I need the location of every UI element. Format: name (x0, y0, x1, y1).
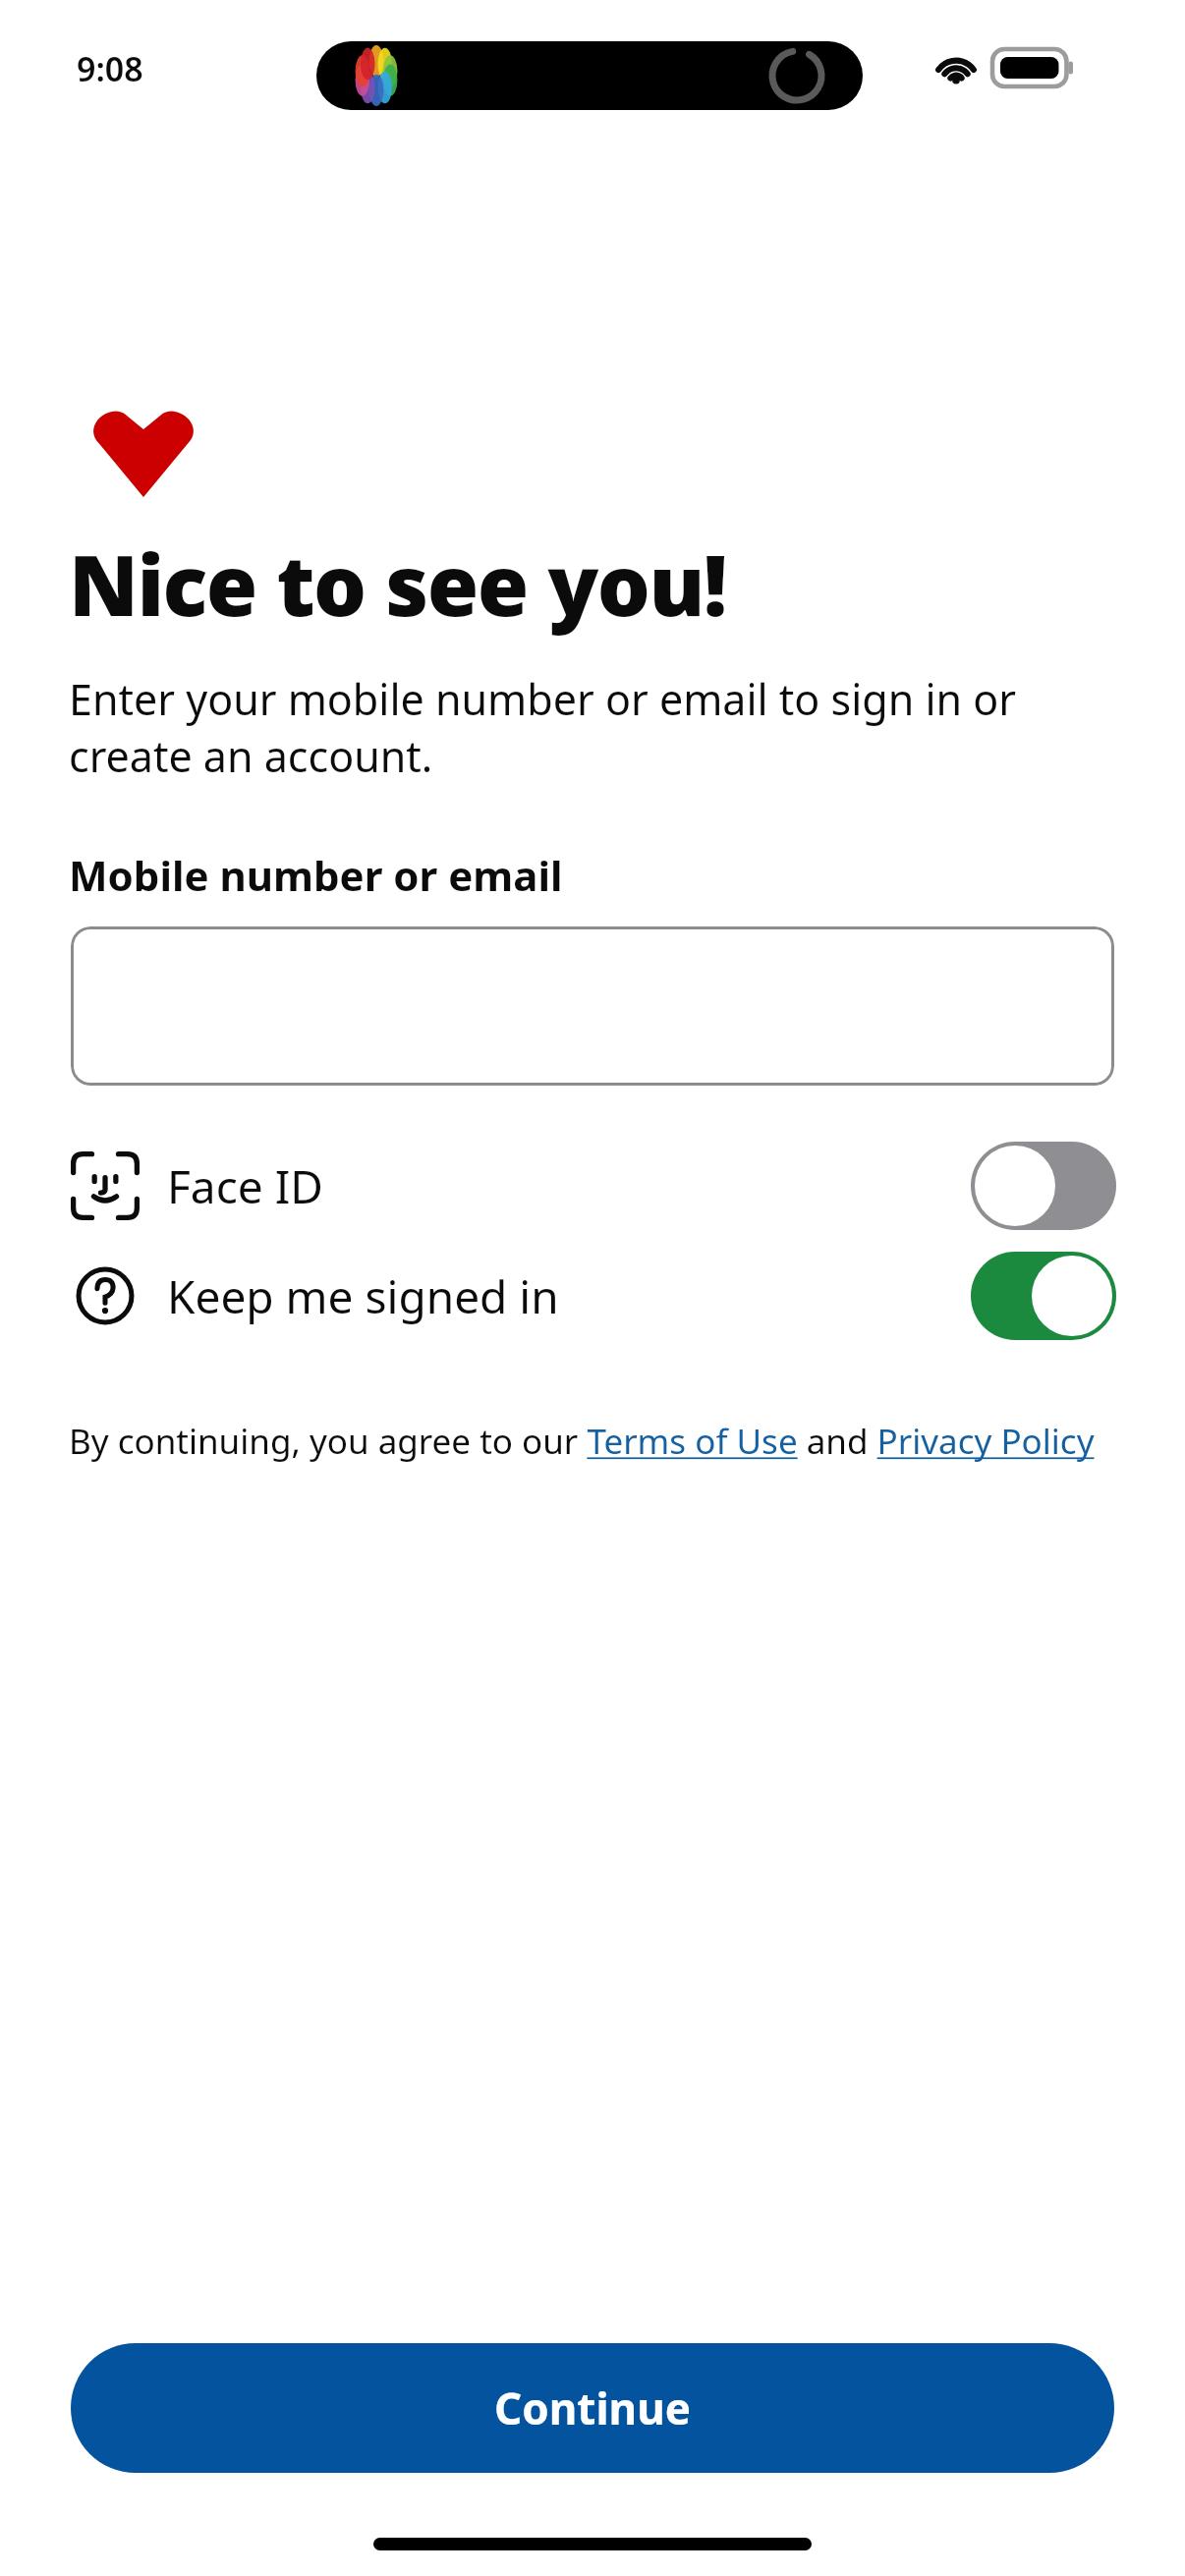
staticText: Enter your mobile number or email to sig… (69, 670, 1118, 784)
staticText: Continue (494, 2379, 692, 2437)
button[interactable]: Help (71, 1247, 1116, 1345)
staticText: Keep me signed in (167, 1265, 559, 1327)
other: Face ID (71, 1151, 140, 1220)
button[interactable]: Face ID (71, 1137, 1116, 1235)
staticText: 9:08 (77, 46, 143, 91)
button[interactable]: Continue (71, 2343, 1114, 2473)
other: Help (71, 1261, 140, 1330)
other: Heart logo (94, 411, 193, 497)
staticText: Face ID (167, 1155, 323, 1217)
staticText: Mobile number or email (69, 847, 563, 903)
button[interactable] (71, 926, 1114, 1086)
staticText: By continuing, you agree to our Terms of… (69, 1418, 1095, 1465)
staticText: Nice to see you! (69, 527, 727, 641)
